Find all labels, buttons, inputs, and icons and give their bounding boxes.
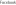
staticText: Facebook	[0, 0, 16, 5]
